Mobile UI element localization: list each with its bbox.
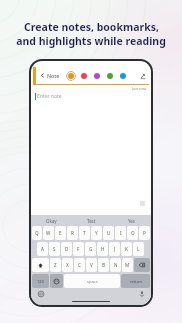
staticText: 123 [37,279,44,284]
button[interactable]: Note [39,70,61,81]
staticText: Just now [132,86,147,91]
staticText: H [101,246,105,252]
button[interactable]: Yes [111,215,151,226]
button[interactable]: X [62,258,73,272]
button[interactable]: Change keyboard [37,290,44,297]
staticText: P [143,230,146,236]
button[interactable]: Colour 1 [66,71,76,81]
button[interactable]: M [122,258,133,272]
staticText: T [83,230,86,236]
button[interactable]: Colour 4 [105,71,115,81]
button[interactable]: I [115,226,126,240]
button[interactable]: E [55,226,66,240]
staticText: F [77,246,80,252]
staticText: and highlights while reading [16,34,166,48]
staticText: return [130,279,142,284]
staticText: S [53,246,56,252]
button[interactable]: return [121,274,150,288]
staticText: Okay [46,218,57,224]
button[interactable]: Shift [32,258,49,272]
button[interactable]: H [97,242,108,256]
button[interactable]: D [61,242,72,256]
staticText: Enter note [37,93,62,100]
staticText: D [65,246,69,252]
button[interactable]: T [79,226,90,240]
button[interactable]: L [133,242,144,256]
button[interactable]: Q [32,226,42,240]
button[interactable]: Test [71,215,111,226]
button[interactable]: J [109,242,120,256]
button[interactable]: Colour 5 [118,71,128,81]
button[interactable]: B [98,258,109,272]
button[interactable]: W [43,226,54,240]
staticText: Z [54,262,57,268]
button[interactable]: Dictate [138,290,145,297]
staticText: B [102,262,105,268]
button[interactable]: U [103,226,114,240]
button[interactable]: 123 [32,274,49,288]
staticText: M [125,262,130,268]
staticText: N [114,262,118,268]
button[interactable]: S [49,242,60,256]
staticText: Q [35,230,39,236]
button[interactable]: V [86,258,97,272]
staticText: O [131,230,135,236]
button[interactable]: Z [50,258,61,272]
staticText: Y [95,230,98,236]
staticText: Test [87,218,96,224]
button[interactable]: Y [91,226,102,240]
button[interactable]: Highlight tool [138,71,147,80]
button[interactable]: O [127,226,138,240]
button[interactable]: Backspace [134,258,150,272]
button[interactable]: F [73,242,84,256]
staticText: Note [47,72,60,79]
button[interactable]: K [121,242,132,256]
button[interactable]: G [85,242,96,256]
button[interactable]: Okay [31,215,71,226]
staticText: V [90,262,93,268]
staticText: L [137,246,140,252]
button[interactable]: N [110,258,121,272]
staticText: R [71,230,74,236]
staticText: K [125,246,128,252]
button[interactable]: C [74,258,85,272]
staticText: J [114,246,116,252]
button[interactable]: A [37,242,48,256]
staticText: Create notes, bookmarks, [24,20,159,34]
button[interactable]: space [64,274,120,288]
staticText: C [78,262,81,268]
button[interactable]: Emoji [50,274,63,288]
staticText: space [87,279,98,284]
staticText: E [59,230,62,236]
staticText: A [41,246,44,252]
staticText: W [46,230,51,236]
button[interactable]: P [139,226,150,240]
staticText: Yes [128,218,135,224]
staticText: I [120,230,122,236]
staticText: X [66,262,69,268]
button[interactable]: R [67,226,78,240]
button[interactable]: Colour 2 [79,71,89,81]
button[interactable]: Colour 3 [92,71,102,81]
staticText: G [89,246,93,252]
staticText: U [107,230,111,236]
